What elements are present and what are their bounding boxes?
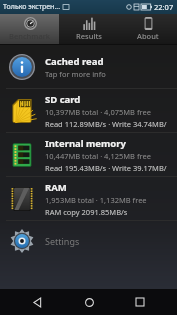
- button[interactable]: Recent apps: [125, 289, 155, 315]
- staticText: 10,397MB total · 4,075MB free: [45, 107, 151, 117]
- button[interactable]: Internal memory: [0, 133, 177, 176]
- staticText: Только экстрен...: [3, 2, 61, 12]
- staticText: Cached read: [45, 55, 104, 68]
- button[interactable]: Benchmark: [0, 14, 59, 44]
- staticText: SD card: [45, 93, 81, 106]
- button[interactable]: RAM: [0, 177, 177, 220]
- staticText: Benchmark: [9, 31, 51, 41]
- button[interactable]: Results: [59, 14, 118, 44]
- staticText: Settings: [45, 235, 80, 247]
- staticText: 22:07: [154, 2, 174, 12]
- button[interactable]: Home: [74, 289, 104, 315]
- staticText: 10,447MB total · 4,125MB free: [45, 151, 151, 161]
- staticText: Read 195.43MB/s · Write 39.17MB/s: [45, 163, 170, 173]
- staticText: Tap for more info: [45, 69, 106, 79]
- button[interactable]: Back: [22, 289, 52, 315]
- staticText: RAM: [45, 181, 67, 194]
- staticText: 1,953MB total · 1,132MB free: [45, 195, 147, 205]
- staticText: About: [137, 31, 159, 41]
- button[interactable]: Cached read: [0, 45, 177, 88]
- button[interactable]: SD card: [0, 89, 177, 132]
- staticText: Read 112.89MB/s · Write 34.74MB/s: [45, 119, 170, 129]
- staticText: Results: [76, 31, 102, 41]
- button[interactable]: Settings: [0, 221, 177, 261]
- staticText: Internal memory: [45, 137, 126, 150]
- staticText: RAM copy 2091.85MB/s: [45, 207, 128, 217]
- button[interactable]: About: [118, 14, 177, 44]
